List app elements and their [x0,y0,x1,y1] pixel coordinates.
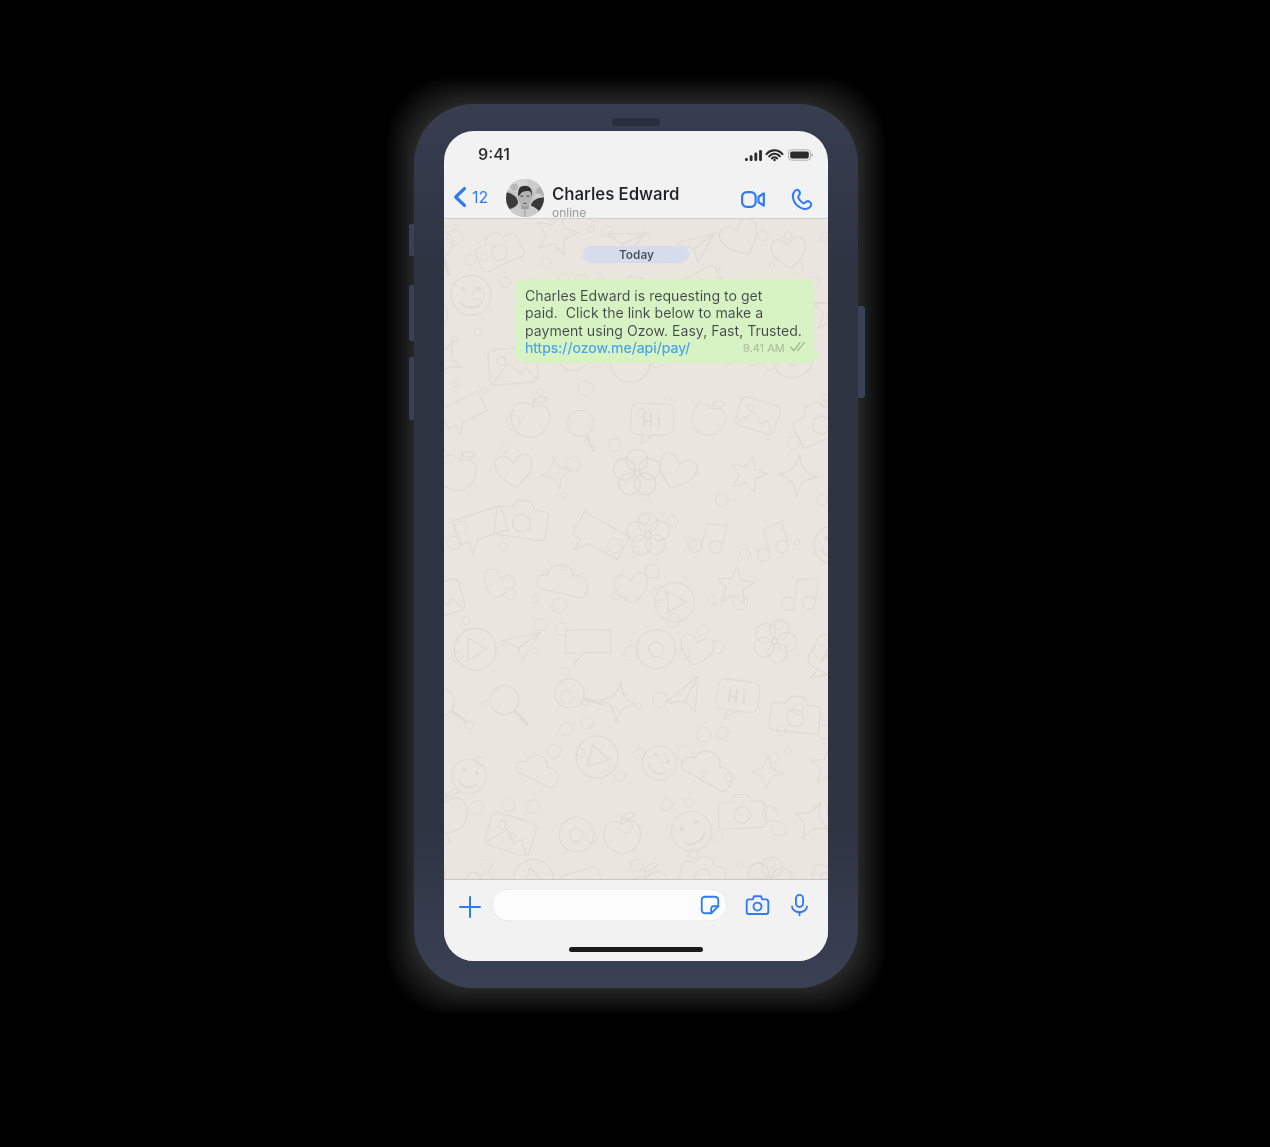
button[interactable]: Charles Edward is requesting to get paid… [516,279,814,363]
staticText: https://ozow.me/api/pay/ [525,339,691,356]
button[interactable]: 12 [449,181,494,213]
button[interactable]: Video call [736,182,770,216]
button[interactable]: Camera [741,890,774,920]
staticText: Today [619,248,654,262]
staticText: 12 [472,187,489,206]
button[interactable]: Stickers [701,896,719,914]
staticText: 9.41 AM [743,341,785,354]
staticText: Charles Edward [552,184,680,204]
button[interactable]: Charles Edward [506,179,680,217]
staticText: Charles Edward is requesting to get paid… [525,287,802,339]
button[interactable]: Today [583,246,689,263]
button[interactable]: Stickers [492,889,727,921]
button[interactable]: Attach [455,892,485,922]
staticText: online [552,205,587,220]
button[interactable]: Voice call [784,182,818,216]
button[interactable]: Voice message [783,889,816,921]
staticText: 9:41 [478,145,511,164]
